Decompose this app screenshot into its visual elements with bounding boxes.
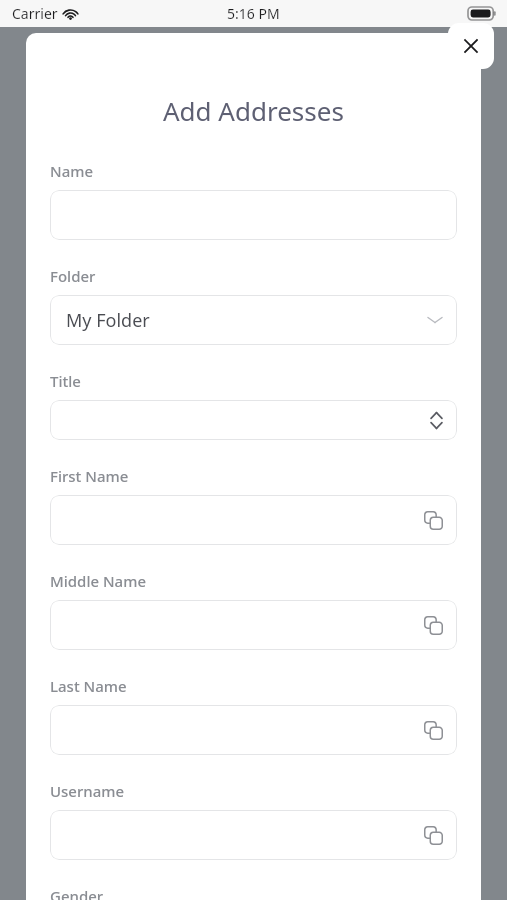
staticText: Name xyxy=(50,161,94,181)
button[interactable]: Close xyxy=(448,23,494,69)
staticText: Gender xyxy=(50,886,104,900)
button[interactable] xyxy=(50,810,457,860)
button[interactable] xyxy=(50,600,457,650)
staticText: Add Addresses xyxy=(163,93,344,128)
staticText: Last Name xyxy=(50,676,127,696)
button[interactable]: My Folder xyxy=(50,295,457,345)
staticText: Carrier xyxy=(12,4,58,23)
button[interactable] xyxy=(50,495,457,545)
staticText: 5:16 PM xyxy=(227,4,280,23)
staticText: My Folder xyxy=(66,308,150,333)
button[interactable] xyxy=(50,705,457,755)
staticText: Middle Name xyxy=(50,571,147,591)
staticText: Username xyxy=(50,781,125,801)
staticText: Title xyxy=(50,371,81,391)
staticText: First Name xyxy=(50,466,129,486)
button[interactable] xyxy=(50,190,457,240)
staticText: Folder xyxy=(50,266,96,286)
button[interactable] xyxy=(50,400,457,440)
